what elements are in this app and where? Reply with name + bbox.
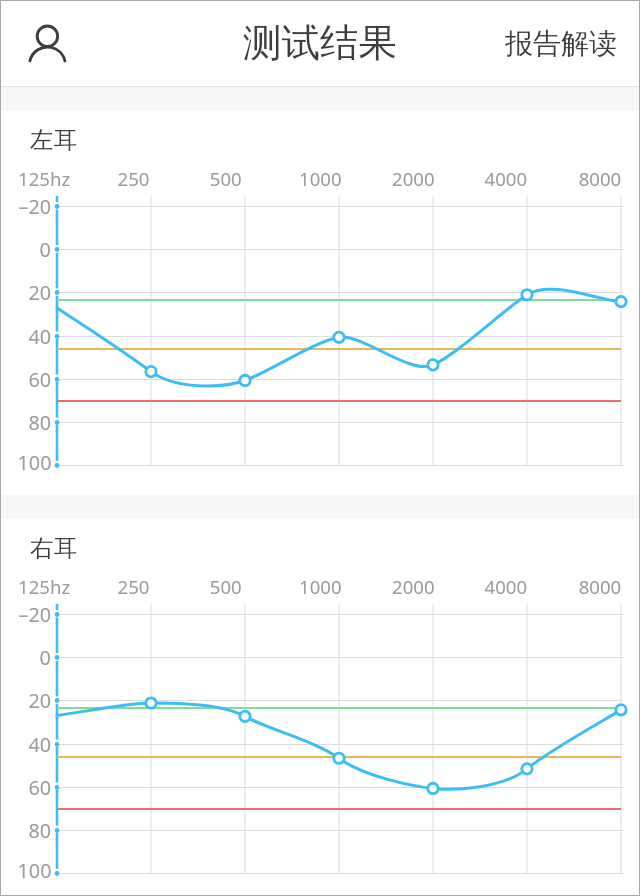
- staticText: 测试结果: [243, 19, 397, 68]
- staticText: 报告解读: [505, 26, 617, 61]
- button[interactable]: Profile: [12, 8, 82, 78]
- button[interactable]: 报告解读: [482, 14, 640, 73]
- staticText: 右耳: [30, 533, 77, 563]
- staticText: 左耳: [30, 125, 77, 155]
